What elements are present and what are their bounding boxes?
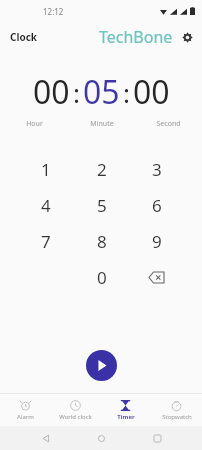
button[interactable]: 3 xyxy=(129,151,184,187)
button[interactable]: 6 xyxy=(129,187,184,223)
button[interactable]: Timer xyxy=(100,394,151,426)
staticText: 00 xyxy=(33,70,70,114)
button[interactable]: 5 xyxy=(74,187,129,223)
staticText: Stopwatch xyxy=(162,413,192,421)
staticText: Clock xyxy=(10,30,38,44)
staticText: 5 xyxy=(97,194,107,217)
staticText: Minute xyxy=(90,119,114,129)
staticText: Hour xyxy=(26,119,43,129)
staticText: 6 xyxy=(152,194,162,217)
staticText: 9 xyxy=(152,230,162,253)
staticText: 3 xyxy=(152,158,162,181)
button[interactable]: Alarm xyxy=(0,394,50,426)
button[interactable]: 7 xyxy=(18,223,74,259)
staticText: 2 xyxy=(97,158,107,181)
button[interactable]: 8 xyxy=(74,223,129,259)
button[interactable]: Home xyxy=(91,428,111,448)
button[interactable]: Back xyxy=(36,428,56,448)
staticText: TechBone xyxy=(99,26,173,48)
staticText: 1 xyxy=(41,158,51,181)
staticText: 7 xyxy=(41,230,51,253)
staticText: 00 xyxy=(133,70,170,114)
button[interactable]: 0 xyxy=(74,259,129,295)
staticText: 0 xyxy=(97,266,107,289)
button[interactable]: 2 xyxy=(74,151,129,187)
staticText: Timer xyxy=(117,413,135,421)
staticText: 4 xyxy=(41,194,51,217)
staticText: 05 xyxy=(83,70,120,114)
button[interactable]: Backspace xyxy=(129,259,184,295)
button[interactable]: World clock xyxy=(50,394,100,426)
button[interactable]: Start timer xyxy=(86,350,117,381)
staticText: Second xyxy=(156,119,181,129)
staticText: : xyxy=(73,75,80,110)
staticText: 8 xyxy=(97,230,107,253)
staticText: Alarm xyxy=(17,413,34,421)
button[interactable]: Settings xyxy=(178,28,196,46)
button[interactable]: 4 xyxy=(18,187,74,223)
button[interactable]: Stopwatch xyxy=(151,394,202,426)
button[interactable]: Recent apps xyxy=(147,428,167,448)
button[interactable]: 9 xyxy=(129,223,184,259)
staticText: World clock xyxy=(59,413,92,421)
button[interactable]: 1 xyxy=(18,151,74,187)
staticText: 12:12 xyxy=(43,6,64,17)
staticText: : xyxy=(123,75,130,110)
